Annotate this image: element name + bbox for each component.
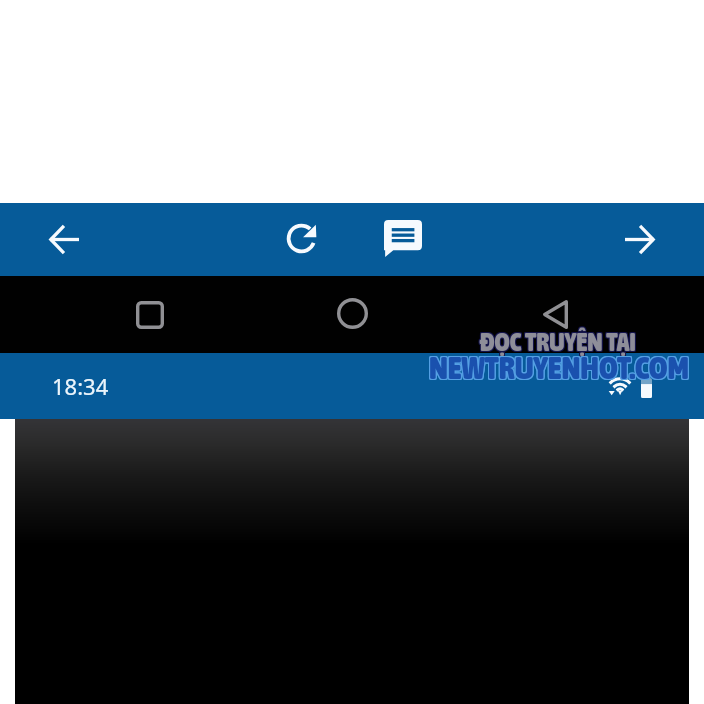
staticText: ĐỌC TRUYỆN TẠI <box>116 328 636 358</box>
staticText: NEWTRUYENHOT.COM <box>168 348 688 385</box>
button[interactable]: Reload <box>273 210 329 267</box>
staticText: ĐỌC TRUYỆN TẠI <box>117 326 637 356</box>
staticText: NEWTRUYENHOT.COM <box>169 348 689 385</box>
staticText: 18:34 <box>52 371 109 401</box>
staticText: ĐỌC TRUYỆN TẠI <box>117 328 637 358</box>
button[interactable]: Home <box>324 285 381 342</box>
staticText: NEWTRUYENHOT.COM <box>170 349 690 386</box>
staticText: NEWTRUYENHOT.COM <box>168 350 688 387</box>
staticText: ĐỌC TRUYỆN TẠI <box>117 327 637 357</box>
staticText: ĐỌC TRUYỆN TẠI <box>116 326 636 356</box>
staticText: ĐỌC TRUYỆN TẠI <box>115 326 635 356</box>
staticText: NEWTRUYENHOT.COM <box>169 349 689 386</box>
staticText: ĐỌC TRUYỆN TẠI <box>116 327 636 357</box>
button[interactable]: Previous chapter <box>34 211 94 268</box>
staticText: ĐỌC TRUYỆN TẠI <box>115 327 635 357</box>
button[interactable]: Back <box>526 286 583 343</box>
staticText: NEWTRUYENHOT.COM <box>170 348 690 385</box>
button[interactable]: Next chapter <box>610 211 670 268</box>
button[interactable]: Recent apps <box>122 286 178 343</box>
staticText: NEWTRUYENHOT.COM <box>170 350 690 387</box>
staticText: NEWTRUYENHOT.COM <box>169 350 689 387</box>
button[interactable]: Comments <box>375 210 431 267</box>
staticText: ĐỌC TRUYỆN TẠI <box>115 328 635 358</box>
staticText: NEWTRUYENHOT.COM <box>168 349 688 386</box>
